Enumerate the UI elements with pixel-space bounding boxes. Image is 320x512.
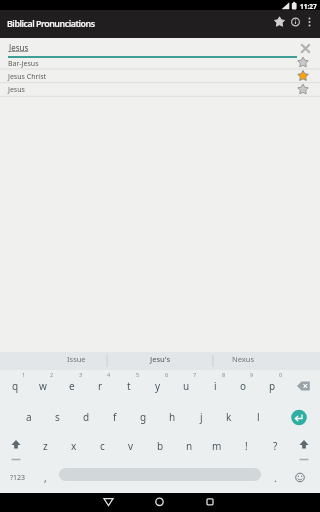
- staticText: 6: [165, 371, 169, 378]
- staticText: w: [39, 379, 47, 393]
- staticText: z: [43, 439, 48, 453]
- staticText: Issue: [67, 354, 86, 364]
- button[interactable]: h: [158, 402, 186, 432]
- button[interactable]: p: [258, 371, 286, 400]
- staticText: k: [226, 410, 232, 424]
- button[interactable]: [290, 371, 320, 400]
- button[interactable]: w: [29, 371, 57, 400]
- button[interactable]: a: [15, 402, 43, 432]
- staticText: 5: [136, 371, 140, 378]
- staticText: Bar-Jesus: [8, 59, 39, 69]
- button[interactable]: j: [187, 402, 215, 432]
- staticText: d: [83, 410, 90, 424]
- button[interactable]: Issue: [50, 350, 102, 367]
- staticText: a: [26, 410, 32, 424]
- staticText: !: [245, 439, 248, 453]
- button[interactable]: Nexus: [217, 350, 269, 367]
- staticText: g: [140, 410, 147, 424]
- button[interactable]: q: [1, 371, 29, 400]
- button[interactable]: ,: [31, 462, 59, 493]
- button[interactable]: f: [101, 402, 129, 432]
- button[interactable]: [1, 431, 31, 461]
- staticText: f: [113, 410, 117, 424]
- button[interactable]: s: [43, 402, 71, 432]
- staticText: Jesus Christ: [8, 72, 47, 82]
- staticText: q: [12, 379, 19, 393]
- staticText: 4: [107, 371, 111, 378]
- button[interactable]: c: [88, 431, 116, 461]
- button[interactable]: [304, 13, 316, 30]
- staticText: Nexus: [232, 354, 254, 364]
- staticText: p: [269, 379, 276, 393]
- staticText: Jesus: [8, 85, 25, 95]
- staticText: 9: [250, 371, 254, 378]
- staticText: i: [214, 379, 217, 393]
- staticText: x: [71, 439, 77, 453]
- staticText: h: [169, 410, 176, 424]
- staticText: 1: [22, 371, 26, 378]
- button[interactable]: y: [144, 371, 172, 400]
- staticText: .: [274, 471, 277, 485]
- staticText: 3: [79, 371, 83, 378]
- button[interactable]: [289, 431, 319, 461]
- staticText: l: [257, 410, 260, 424]
- button[interactable]: [195, 493, 225, 512]
- staticText: s: [55, 410, 60, 424]
- button[interactable]: u: [172, 371, 200, 400]
- staticText: ?: [273, 439, 278, 453]
- button[interactable]: o: [229, 371, 257, 400]
- button[interactable]: [284, 402, 314, 432]
- button[interactable]: Jesus Christ: [0, 70, 320, 83]
- staticText: 0: [279, 371, 283, 378]
- button[interactable]: r: [86, 371, 114, 400]
- staticText: j: [200, 410, 203, 424]
- staticText: 2: [50, 371, 54, 378]
- button[interactable]: Jesus: [0, 83, 320, 96]
- button[interactable]: .: [261, 462, 289, 493]
- button[interactable]: [270, 12, 289, 31]
- button[interactable]: Bar-Jesus: [0, 57, 320, 70]
- button[interactable]: [94, 493, 124, 512]
- button[interactable]: m: [203, 431, 231, 461]
- staticText: 7: [193, 371, 197, 378]
- staticText: c: [100, 439, 105, 453]
- staticText: v: [128, 439, 134, 453]
- staticText: Biblical Pronunciations: [7, 18, 95, 30]
- button[interactable]: ?: [261, 431, 289, 461]
- button[interactable]: n: [175, 431, 203, 461]
- button[interactable]: [298, 41, 313, 56]
- button[interactable]: x: [60, 431, 88, 461]
- button[interactable]: k: [215, 402, 243, 432]
- staticText: 11:27: [300, 2, 317, 11]
- button[interactable]: t: [115, 371, 143, 400]
- button[interactable]: [145, 493, 175, 512]
- button[interactable]: ?123: [3, 462, 32, 493]
- button[interactable]: e: [58, 371, 86, 400]
- button[interactable]: Jesu's: [134, 350, 186, 367]
- staticText: e: [69, 379, 75, 393]
- staticText: b: [157, 439, 164, 453]
- staticText: m: [212, 439, 222, 453]
- button[interactable]: g: [129, 402, 157, 432]
- staticText: n: [186, 439, 193, 453]
- staticText: 8: [222, 371, 226, 378]
- button[interactable]: z: [31, 431, 59, 461]
- staticText: u: [183, 379, 190, 393]
- staticText: y: [155, 379, 161, 393]
- button[interactable]: l: [244, 402, 272, 432]
- button[interactable]: v: [117, 431, 145, 461]
- staticText: ,: [44, 471, 47, 485]
- button[interactable]: [288, 462, 312, 493]
- button[interactable]: i: [201, 371, 229, 400]
- button[interactable]: [288, 13, 304, 30]
- staticText: o: [240, 379, 247, 393]
- button[interactable]: [0, 38, 298, 57]
- staticText: r: [98, 379, 103, 393]
- staticText: Jesu's: [150, 354, 171, 364]
- staticText: Jesus: [9, 42, 29, 53]
- button[interactable]: d: [72, 402, 100, 432]
- staticText: ?123: [10, 473, 26, 483]
- button[interactable]: !: [232, 431, 260, 461]
- button[interactable]: b: [146, 431, 174, 461]
